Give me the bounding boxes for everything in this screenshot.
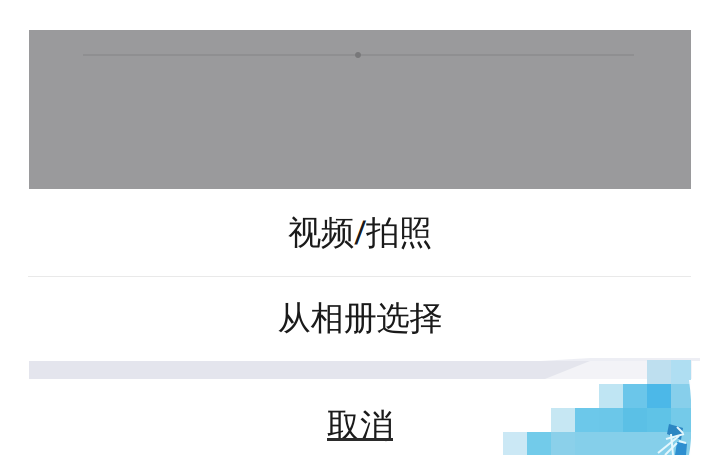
staticText: 从相册选择 bbox=[277, 298, 442, 339]
button[interactable]: 视频/拍照 bbox=[0, 187, 720, 276]
staticText: 取消 bbox=[327, 405, 393, 446]
button[interactable]: 取消 bbox=[130, 381, 590, 455]
staticText: 视频/拍照 bbox=[288, 209, 432, 254]
button[interactable]: 从相册选择 bbox=[0, 277, 720, 360]
